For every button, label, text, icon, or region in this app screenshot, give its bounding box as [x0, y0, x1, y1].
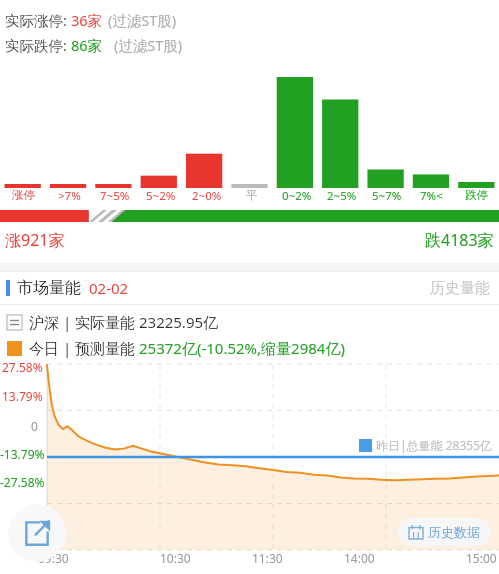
staticText: 跌4183家 [425, 229, 494, 251]
staticText: 历史量能 [430, 279, 490, 298]
staticText: -27.58% [0, 474, 45, 490]
staticText: 11:30 [252, 550, 283, 566]
staticText: 36家 [71, 10, 103, 30]
button[interactable]: 历史量能 [427, 276, 493, 301]
staticText: (过滤ST股) [108, 10, 177, 30]
staticText: 平 [246, 188, 258, 202]
staticText: (过滤ST股) [114, 35, 183, 55]
button[interactable]: 分享 [8, 504, 66, 562]
staticText: 5~2% [146, 188, 176, 204]
staticText: 14:00 [344, 550, 375, 566]
staticText: 5~7% [372, 188, 402, 204]
staticText: 2~5% [327, 188, 357, 204]
staticText: 涨921家 [5, 229, 65, 251]
staticText: 2~0% [192, 188, 222, 204]
staticText: -13.79% [0, 446, 45, 462]
staticText: 涨停 [12, 188, 35, 202]
staticText: 实际跌停: [5, 35, 71, 55]
staticText: 0 [31, 418, 38, 434]
staticText: 实际涨停: [5, 10, 71, 30]
staticText: 昨日|总量能 28355亿 [376, 437, 493, 453]
staticText: 13.79% [2, 388, 43, 404]
staticText: 0~2% [282, 188, 312, 204]
staticText: 10:30 [160, 550, 191, 566]
staticText: 沪深 | 实际量能 23225.95亿 [29, 312, 219, 332]
staticText: 今日 | 预测量能 [29, 338, 139, 358]
staticText: 7%< [420, 188, 443, 204]
staticText: 09:30 [38, 550, 69, 566]
staticText: 市场量能 [17, 278, 81, 298]
button[interactable]: 历史数据 [398, 518, 491, 546]
staticText: 27.58% [2, 359, 43, 375]
staticText: >7% [58, 188, 81, 204]
staticText: 7~5% [100, 188, 130, 204]
staticText: 跌停 [465, 188, 488, 202]
staticText: 历史数据 [428, 524, 480, 540]
staticText: 25372亿(-10.52%,缩量2984亿) [139, 338, 345, 358]
staticText: 86家 [71, 35, 103, 55]
staticText: 02-02 [89, 278, 129, 298]
staticText: 15:00 [466, 550, 497, 566]
